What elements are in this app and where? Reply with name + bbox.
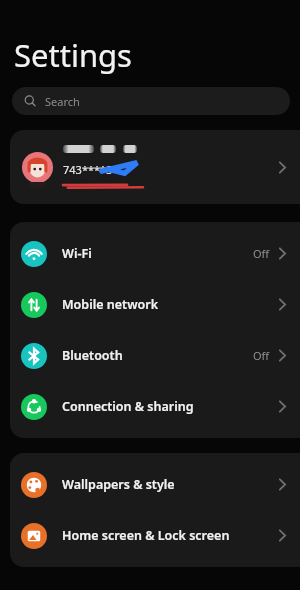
button[interactable]: Connection and sharing [10, 381, 300, 432]
other: Connection and sharing [21, 394, 47, 420]
button[interactable]: Account avatar [10, 130, 300, 204]
staticText: Connection & sharing [62, 398, 194, 415]
staticText: Wallpapers & style [62, 476, 175, 493]
button[interactable]: Search [12, 87, 290, 115]
button[interactable]: Mobile network [10, 279, 300, 330]
staticText: Wi-Fi [62, 245, 92, 262]
staticText: Search [45, 94, 80, 109]
button[interactable]: Wallpapers and style [10, 459, 300, 510]
other: Mobile network [21, 292, 47, 318]
staticText: Home screen & Lock screen [62, 527, 230, 544]
staticText: Mobile network [62, 296, 159, 313]
other: Bluetooth [21, 343, 47, 369]
other: Account avatar [22, 152, 53, 183]
other: Wallpapers and style [21, 472, 47, 498]
staticText: Bluetooth [62, 347, 123, 364]
button[interactable]: Wi-Fi [10, 228, 300, 279]
staticText: Settings [14, 34, 132, 76]
staticText: Off [253, 348, 270, 363]
other: Wi-Fi [21, 241, 47, 267]
button[interactable]: Bluetooth [10, 330, 300, 381]
button[interactable]: Home screen and Lock screen [10, 510, 300, 561]
other: Home screen and Lock screen [21, 523, 47, 549]
staticText: 743****5 [63, 162, 113, 177]
staticText: Off [253, 246, 270, 261]
